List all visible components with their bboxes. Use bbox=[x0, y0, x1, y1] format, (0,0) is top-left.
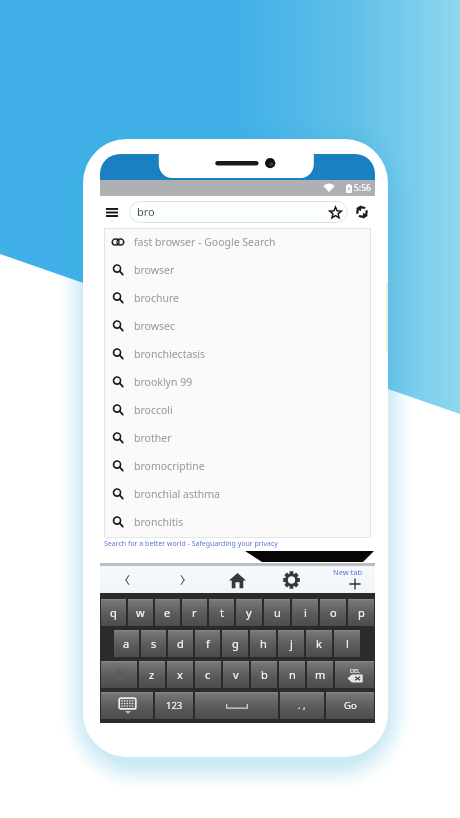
button[interactable]: browser bbox=[104, 256, 371, 284]
button[interactable] bbox=[195, 692, 278, 719]
button[interactable]: r bbox=[182, 599, 207, 626]
staticText: bro bbox=[137, 204, 155, 219]
staticText: x bbox=[177, 667, 183, 682]
button[interactable]: brochure bbox=[104, 284, 371, 312]
staticText: bronchiectasis bbox=[134, 347, 206, 361]
button[interactable]: f bbox=[195, 630, 220, 657]
button[interactable]: u bbox=[264, 599, 290, 626]
button[interactable]: Go bbox=[326, 692, 374, 719]
staticText: c bbox=[205, 667, 211, 682]
staticText: w bbox=[136, 605, 145, 620]
button[interactable]: n bbox=[279, 661, 305, 688]
staticText: New tab bbox=[333, 567, 363, 577]
button[interactable]: b bbox=[251, 661, 277, 688]
button[interactable] bbox=[101, 692, 153, 719]
button[interactable]: y bbox=[236, 599, 262, 626]
staticText: e bbox=[164, 605, 171, 620]
button[interactable]: fast browser - Google Search bbox=[104, 228, 371, 256]
button[interactable]: p bbox=[348, 599, 374, 626]
button[interactable]: Back bbox=[111, 565, 143, 595]
button[interactable]: k bbox=[306, 630, 332, 657]
button[interactable]: Reload bbox=[351, 196, 373, 228]
button[interactable]: s bbox=[141, 630, 166, 657]
staticText: brother bbox=[134, 431, 172, 445]
staticText: 5:56 bbox=[354, 182, 371, 194]
button[interactable]: x bbox=[167, 661, 193, 688]
staticText: y bbox=[246, 605, 252, 620]
button[interactable]: 123 bbox=[155, 692, 193, 719]
staticText: r bbox=[192, 605, 197, 620]
staticText: . , bbox=[298, 699, 306, 712]
staticText: q bbox=[110, 605, 117, 620]
staticText: j bbox=[290, 636, 293, 651]
staticText: bronchial asthma bbox=[134, 487, 220, 501]
staticText: i bbox=[304, 605, 307, 620]
button[interactable]: bromocriptine bbox=[104, 452, 371, 480]
staticText: fast browser - Google Search bbox=[134, 235, 276, 249]
staticText: browser bbox=[134, 263, 175, 277]
staticText: m bbox=[315, 667, 326, 682]
button[interactable]: c bbox=[195, 661, 221, 688]
staticText: p bbox=[358, 605, 365, 620]
button[interactable]: i bbox=[292, 599, 318, 626]
staticText: 123 bbox=[166, 699, 183, 712]
staticText: DEL bbox=[350, 667, 360, 674]
button[interactable]: m bbox=[307, 661, 333, 688]
button[interactable]: Bookmark bbox=[329, 206, 342, 219]
staticText: broccoli bbox=[134, 403, 173, 417]
button[interactable]: v bbox=[223, 661, 249, 688]
button[interactable]: h bbox=[250, 630, 276, 657]
staticText: t bbox=[220, 605, 224, 620]
button[interactable]: broccoli bbox=[104, 396, 371, 424]
button[interactable]: browsec bbox=[104, 312, 371, 340]
button[interactable]: . , bbox=[280, 692, 324, 719]
staticText: bronchitis bbox=[134, 515, 184, 529]
staticText: browsec bbox=[134, 319, 175, 333]
button[interactable]: Settings bbox=[275, 565, 307, 595]
button[interactable]: brooklyn 99 bbox=[104, 368, 371, 396]
staticText: s bbox=[151, 636, 157, 651]
button[interactable]: bro bbox=[129, 201, 348, 223]
button[interactable]: bronchiectasis bbox=[104, 340, 371, 368]
button[interactable]: e bbox=[155, 599, 180, 626]
button[interactable]: l bbox=[334, 630, 360, 657]
staticText: g bbox=[232, 636, 239, 651]
button[interactable]: Menu bbox=[101, 196, 123, 228]
staticText: h bbox=[260, 636, 267, 651]
button[interactable]: a bbox=[114, 630, 139, 657]
staticText: o bbox=[330, 605, 337, 620]
staticText: Go bbox=[344, 699, 357, 712]
button[interactable]: bronchial asthma bbox=[104, 480, 371, 508]
button[interactable]: brother bbox=[104, 424, 371, 452]
button[interactable]: q bbox=[101, 599, 126, 626]
staticText: a bbox=[123, 636, 130, 651]
button[interactable]: Home bbox=[221, 565, 253, 595]
button[interactable]: o bbox=[320, 599, 346, 626]
staticText: z bbox=[149, 667, 155, 682]
button[interactable]: New tab bbox=[320, 563, 375, 593]
button[interactable]: w bbox=[128, 599, 153, 626]
staticText: brochure bbox=[134, 291, 180, 305]
staticText: bromocriptine bbox=[134, 459, 205, 473]
button[interactable]: t bbox=[209, 599, 234, 626]
button[interactable]: DEL bbox=[335, 661, 374, 688]
button[interactable]: d bbox=[168, 630, 193, 657]
staticText: b bbox=[261, 667, 268, 682]
staticText: k bbox=[316, 636, 322, 651]
button[interactable] bbox=[101, 661, 137, 688]
button[interactable]: Forward bbox=[166, 565, 198, 595]
staticText: n bbox=[289, 667, 296, 682]
staticText: f bbox=[206, 636, 210, 651]
button[interactable]: bronchitis bbox=[104, 508, 371, 536]
button[interactable]: g bbox=[222, 630, 248, 657]
staticText: u bbox=[274, 605, 281, 620]
button[interactable]: z bbox=[139, 661, 165, 688]
staticText: d bbox=[177, 636, 184, 651]
staticText: v bbox=[233, 667, 239, 682]
staticText: brooklyn 99 bbox=[134, 375, 193, 389]
staticText: Search for a better world - Safeguarding… bbox=[104, 539, 278, 549]
staticText: l bbox=[346, 636, 349, 651]
button[interactable]: j bbox=[278, 630, 304, 657]
